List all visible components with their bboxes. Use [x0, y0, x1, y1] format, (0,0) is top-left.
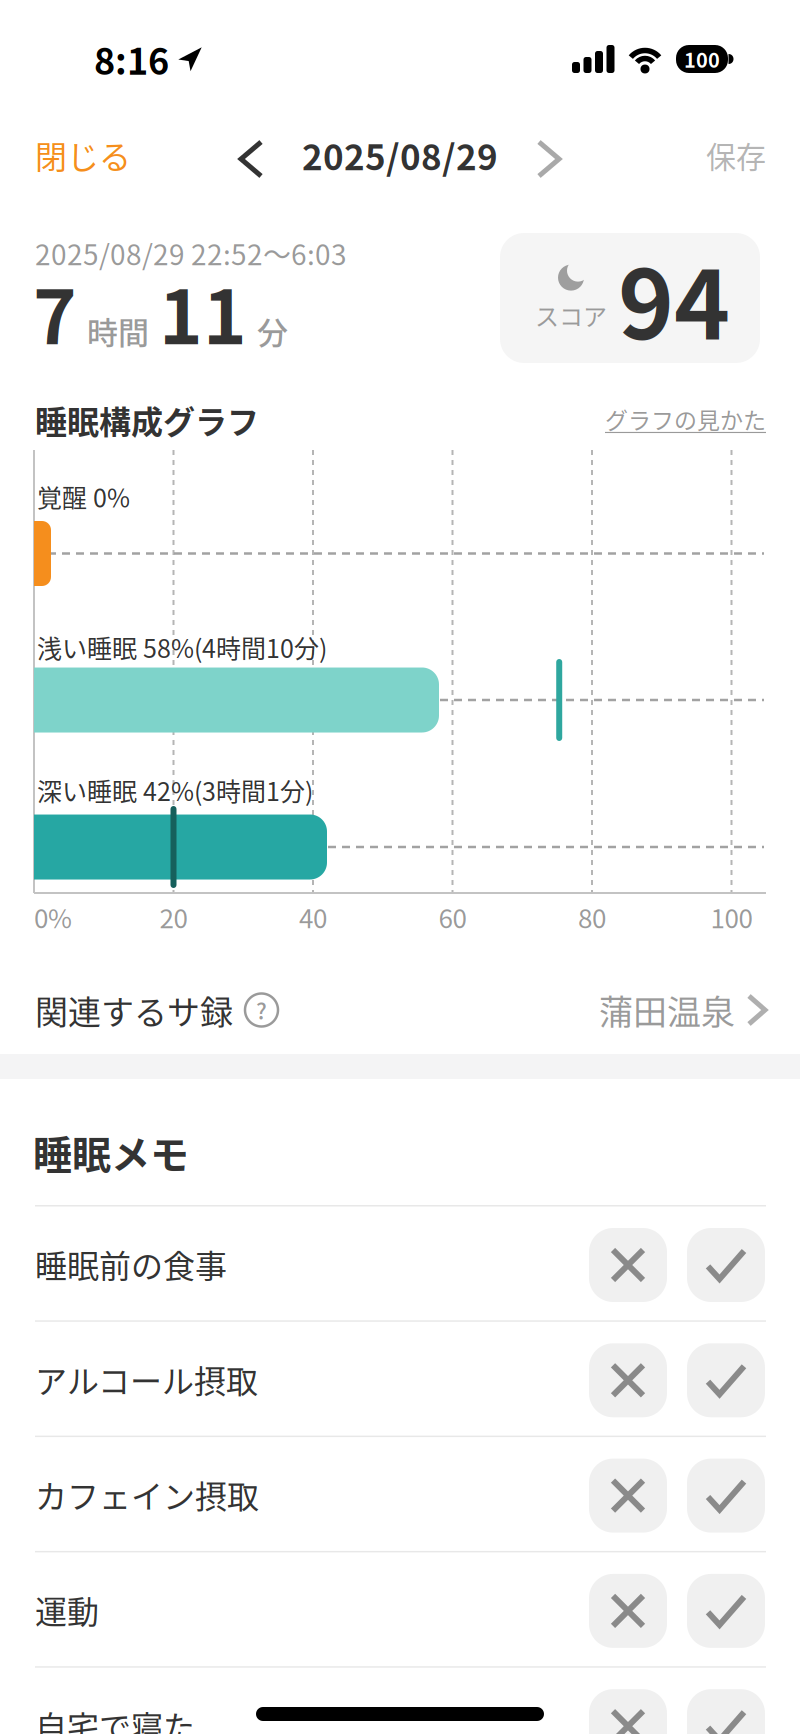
staticText: 運動 [35, 1587, 99, 1633]
button[interactable]: ヘルプ [245, 993, 278, 1026]
button[interactable]: 前の日 [233, 134, 269, 184]
staticText: 11 [159, 258, 247, 366]
staticText: 浅い睡眠 58%(4時間10分) [37, 629, 327, 665]
staticText: 蒲田温泉 [599, 985, 735, 1035]
button[interactable]: アルコール摂取 いいえ [589, 1343, 667, 1417]
button[interactable]: 次の日 [531, 134, 567, 184]
staticText: グラフの見かた [605, 402, 766, 436]
staticText: スコア [535, 298, 607, 332]
button[interactable]: 睡眠前の食事 はい [687, 1228, 765, 1302]
button[interactable]: 保存 [646, 133, 766, 177]
button[interactable]: 自宅で寝た いいえ [589, 1689, 667, 1734]
button[interactable]: 睡眠前の食事 いいえ [589, 1228, 667, 1302]
staticText: 分 [257, 308, 288, 353]
staticText: 100 [710, 898, 752, 936]
staticText: 睡眠前の食事 [35, 1241, 227, 1287]
button[interactable]: カフェイン摂取 はい [687, 1459, 765, 1533]
staticText: 関連するサ録 [35, 986, 233, 1034]
staticText: 7 [33, 258, 77, 366]
staticText: 100 [684, 44, 720, 73]
staticText: 閉じる [35, 132, 131, 178]
staticText: 40 [299, 898, 327, 936]
staticText: 保存 [706, 133, 766, 177]
staticText: 深い睡眠 42%(3時間1分) [37, 772, 313, 808]
staticText: 2025/08/29 [302, 130, 498, 180]
staticText: ? [256, 994, 267, 1026]
button[interactable]: カフェイン摂取 いいえ [589, 1459, 667, 1533]
staticText: 睡眠構成グラフ [35, 397, 259, 443]
button[interactable]: 自宅で寝た はい [687, 1689, 765, 1734]
staticText: 80 [578, 898, 606, 936]
staticText: 時間 [87, 308, 149, 353]
staticText: 94 [618, 229, 730, 367]
button[interactable]: 閉じる [35, 133, 131, 177]
staticText: カフェイン摂取 [35, 1471, 259, 1518]
staticText: 覚醒 0% [37, 478, 130, 515]
button[interactable]: 運動 はい [687, 1574, 765, 1648]
staticText: 睡眠メモ [33, 1124, 189, 1180]
staticText: 自宅で寝た [35, 1702, 195, 1734]
staticText: 60 [438, 898, 466, 936]
staticText: アルコール摂取 [35, 1356, 258, 1402]
button[interactable]: 蒲田温泉 [515, 988, 765, 1032]
staticText: 20 [159, 898, 187, 936]
button[interactable]: 運動 いいえ [589, 1574, 667, 1648]
button[interactable]: グラフの見かた [536, 401, 766, 437]
staticText: 8:16 [94, 33, 169, 85]
staticText: 2025/08/29 22:52〜6:03 [35, 233, 347, 273]
staticText: 0% [34, 898, 72, 936]
button[interactable]: アルコール摂取 はい [687, 1343, 765, 1417]
